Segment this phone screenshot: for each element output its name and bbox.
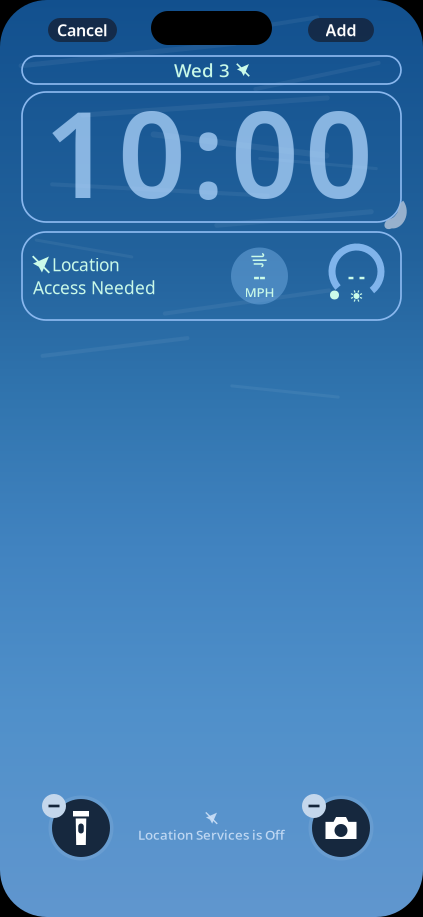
staticText: Wed 3 bbox=[174, 58, 230, 82]
button[interactable]: 10:00 bbox=[22, 92, 401, 222]
staticText: Location bbox=[52, 253, 120, 276]
button[interactable]: Cancel bbox=[48, 18, 117, 42]
staticText: MPH bbox=[244, 283, 274, 301]
staticText: - - bbox=[348, 264, 365, 288]
staticText: Access Needed bbox=[33, 276, 156, 299]
button[interactable]: Remove Camera bbox=[304, 791, 378, 865]
staticText: Cancel bbox=[57, 19, 108, 41]
button[interactable]: Add bbox=[308, 18, 374, 42]
staticText: -- bbox=[253, 264, 265, 288]
button[interactable]: Remove Flashlight bbox=[44, 791, 118, 865]
button[interactable]: Location bbox=[22, 232, 401, 320]
button[interactable]: Wed 3 bbox=[22, 56, 401, 84]
staticText: Add bbox=[325, 19, 356, 41]
staticText: Location Services is Off bbox=[138, 826, 285, 843]
staticText: 10:00 bbox=[44, 73, 373, 231]
